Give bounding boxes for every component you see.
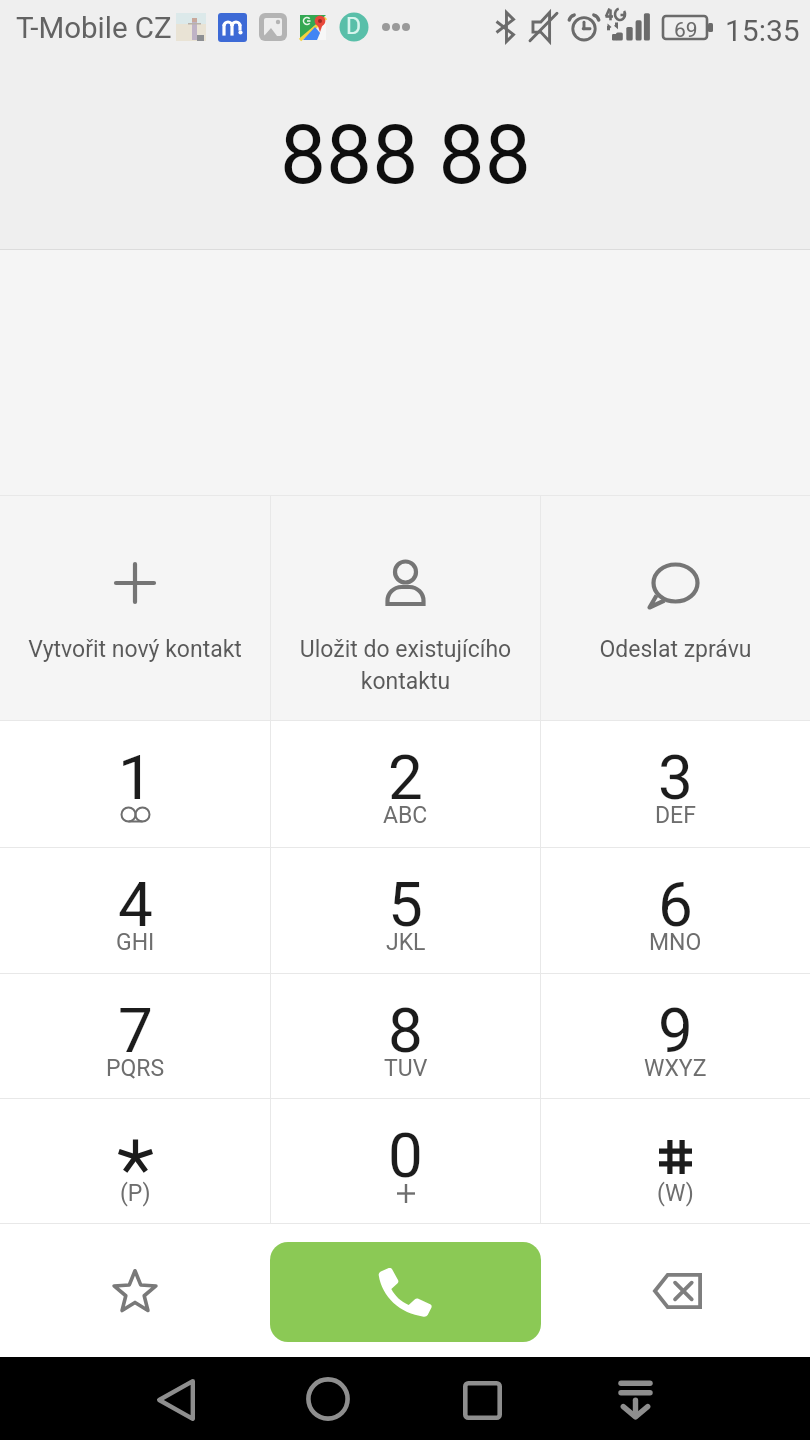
button[interactable]: 8 (271, 974, 540, 1098)
button[interactable]: 7 (0, 974, 270, 1098)
button[interactable]: (P) (0, 1099, 270, 1223)
button[interactable]: Back (140, 1364, 212, 1436)
staticText: 8 (388, 994, 423, 1067)
button[interactable]: 0 (271, 1099, 540, 1223)
staticText: 6 (658, 868, 693, 941)
button[interactable]: Backspace (647, 1261, 707, 1321)
button[interactable]: 3 (541, 721, 810, 847)
button[interactable]: 1 (0, 721, 270, 847)
staticText: (W) (657, 1180, 694, 1207)
button[interactable]: Recents (446, 1364, 518, 1436)
staticText: 1 (118, 741, 153, 814)
staticText: JKL (386, 929, 426, 956)
button[interactable]: Hide keyboard (599, 1363, 671, 1435)
staticText: 0 (388, 1119, 423, 1192)
button[interactable]: Call (270, 1242, 541, 1342)
button[interactable]: Home (292, 1363, 364, 1435)
staticText: 5 (388, 868, 423, 941)
staticText: D (346, 13, 362, 40)
staticText: 69 (674, 18, 698, 43)
staticText: T-Mobile CZ (16, 11, 172, 46)
staticText: WXYZ (644, 1055, 707, 1082)
button[interactable]: Uložit do existujícího kontaktu (271, 496, 540, 720)
button[interactable]: 5 (271, 848, 540, 973)
staticText: 3 (658, 741, 693, 814)
staticText: ABC (383, 802, 428, 829)
staticText: GHI (116, 929, 155, 956)
button[interactable]: 2 (271, 721, 540, 847)
button[interactable]: 4 (0, 848, 270, 973)
staticText: Odeslat zprávu (547, 636, 804, 663)
staticText: 7 (118, 994, 153, 1067)
staticText: PQRS (106, 1055, 165, 1082)
staticText: DEF (655, 802, 696, 829)
staticText: MNO (649, 929, 702, 956)
button[interactable]: (W) (541, 1099, 810, 1223)
button[interactable]: Vytvořit nový kontakt (0, 496, 270, 720)
button[interactable]: 6 (541, 848, 810, 973)
staticText: TUV (384, 1055, 428, 1082)
button[interactable]: Favourites (107, 1263, 163, 1319)
staticText: 15:35 (725, 13, 800, 48)
staticText: Uložit do existujícího kontaktu (277, 636, 534, 694)
button[interactable]: 9 (541, 974, 810, 1098)
button[interactable]: Odeslat zprávu (541, 496, 810, 720)
staticText: Vytvořit nový kontakt (6, 636, 264, 663)
staticText: 4 (118, 868, 153, 941)
staticText: (P) (120, 1180, 151, 1207)
staticText: 9 (658, 994, 693, 1067)
staticText: 888 88 (280, 107, 531, 203)
staticText: 2 (388, 741, 423, 814)
